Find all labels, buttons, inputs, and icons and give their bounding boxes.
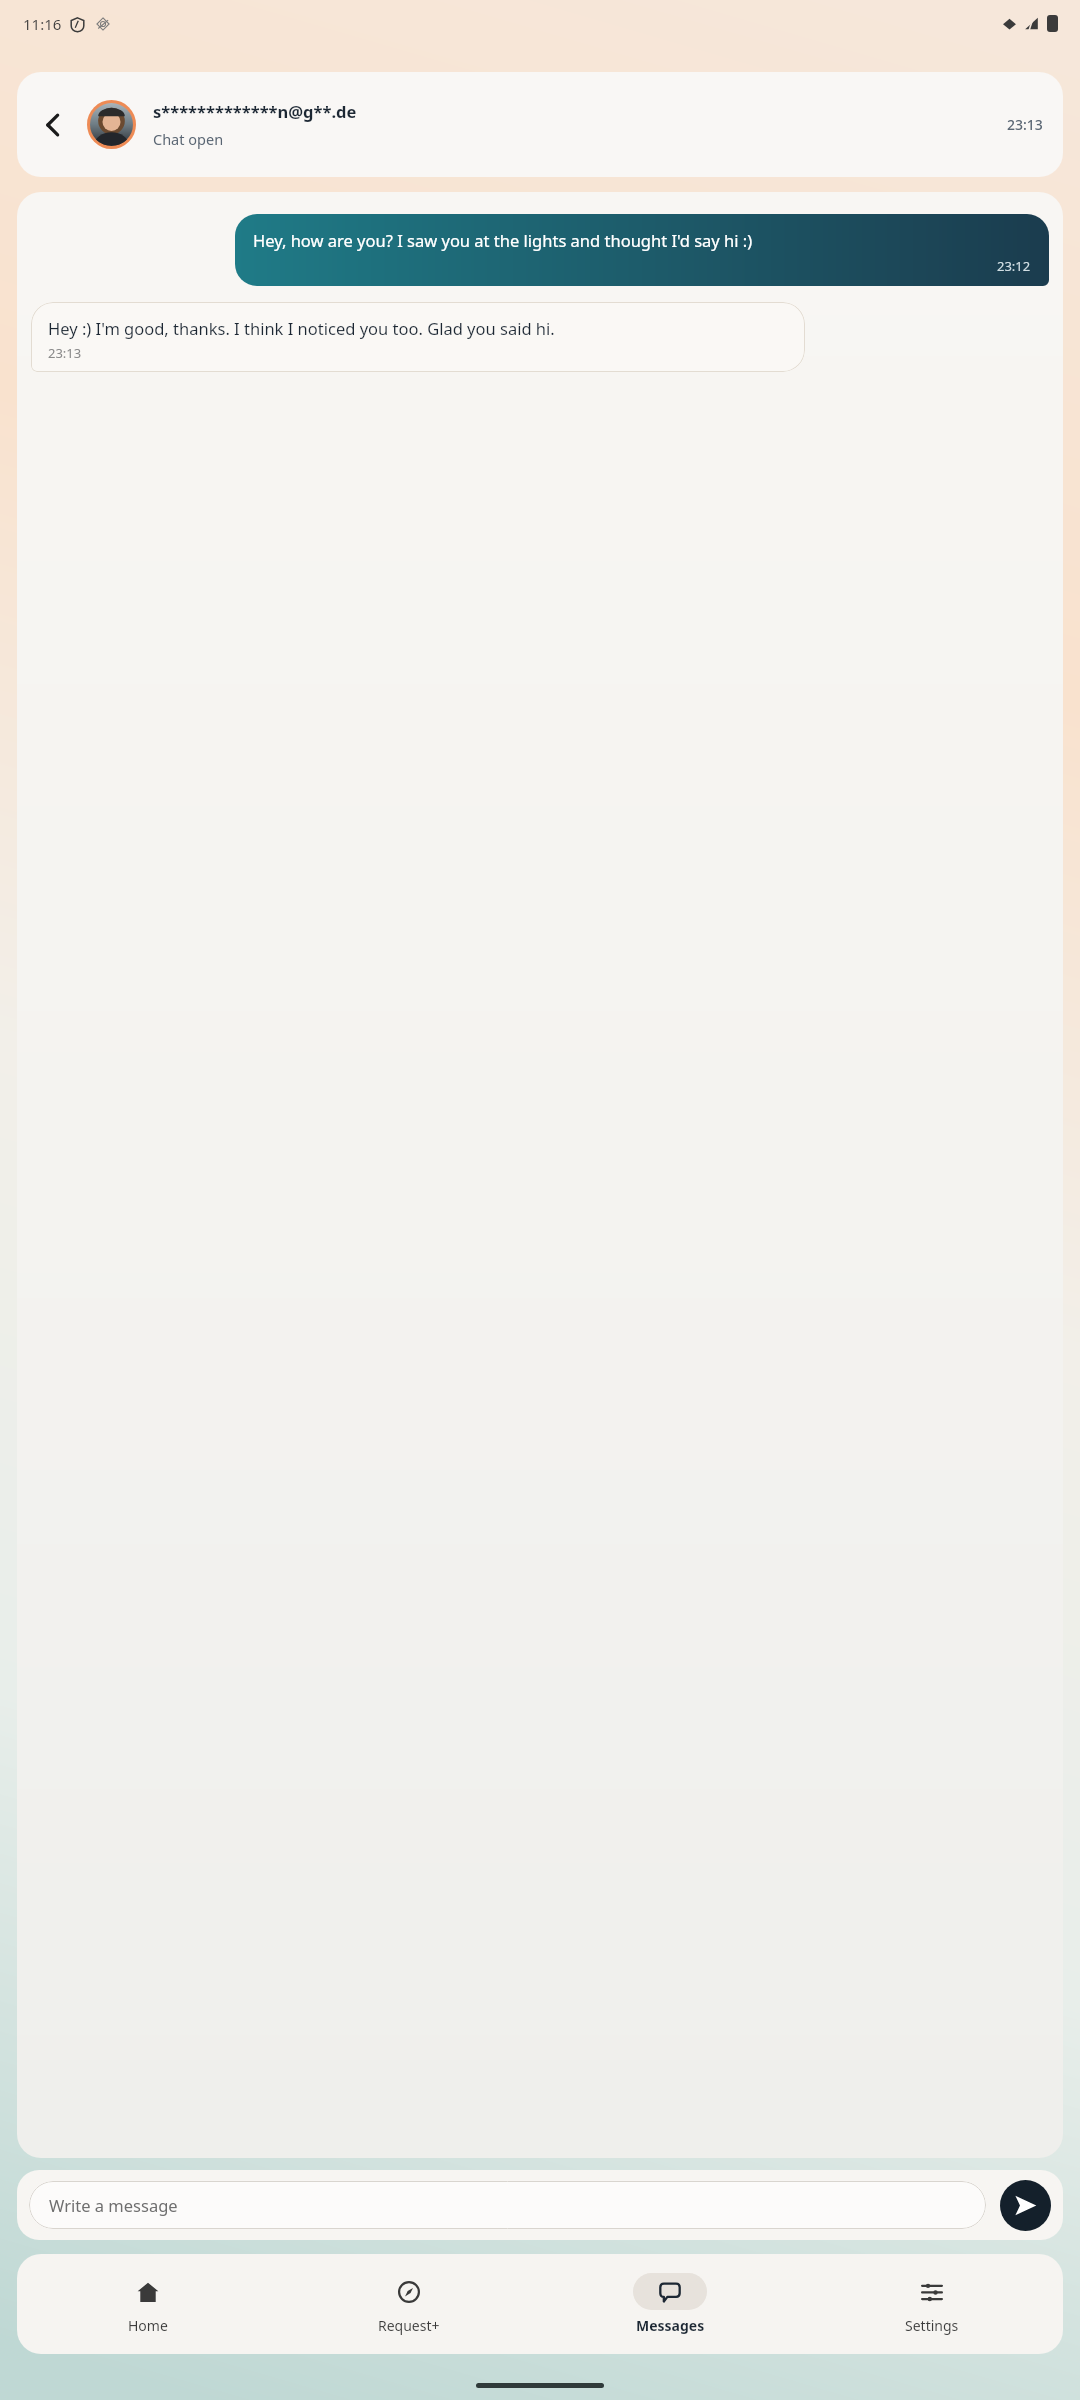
staticText: Request+	[378, 2316, 440, 2335]
staticText: s*************n@g**.de	[153, 100, 357, 122]
staticText: 11:16	[23, 14, 62, 34]
button[interactable]: Request+	[278, 2254, 539, 2354]
button[interactable]: Write a message	[29, 2181, 986, 2229]
button[interactable]: Home	[17, 2254, 278, 2354]
button[interactable]: Messages	[539, 2254, 801, 2354]
staticText: Messages	[636, 2316, 705, 2335]
button[interactable]: s*************n@g**.de	[153, 100, 1001, 149]
button[interactable]: Profile photo	[87, 100, 136, 149]
staticText: 23:12	[997, 257, 1031, 275]
button[interactable]: Hey, how are you? I saw you at the light…	[235, 214, 1049, 286]
button[interactable]: Back	[25, 97, 81, 153]
staticText: Settings	[905, 2316, 959, 2335]
button[interactable]: Settings	[801, 2254, 1063, 2354]
staticText: Chat open	[153, 129, 224, 149]
staticText: Hey, how are you? I saw you at the light…	[253, 229, 753, 251]
staticText: Home	[128, 2316, 168, 2335]
button[interactable]: Send	[1000, 2180, 1051, 2231]
staticText: Hey :) I'm good, thanks. I think I notic…	[48, 317, 555, 339]
staticText: Write a message	[49, 2194, 178, 2216]
button[interactable]: Hey :) I'm good, thanks. I think I notic…	[31, 302, 805, 372]
staticText: 23:13	[1007, 115, 1043, 134]
staticText: 23:13	[48, 344, 82, 362]
